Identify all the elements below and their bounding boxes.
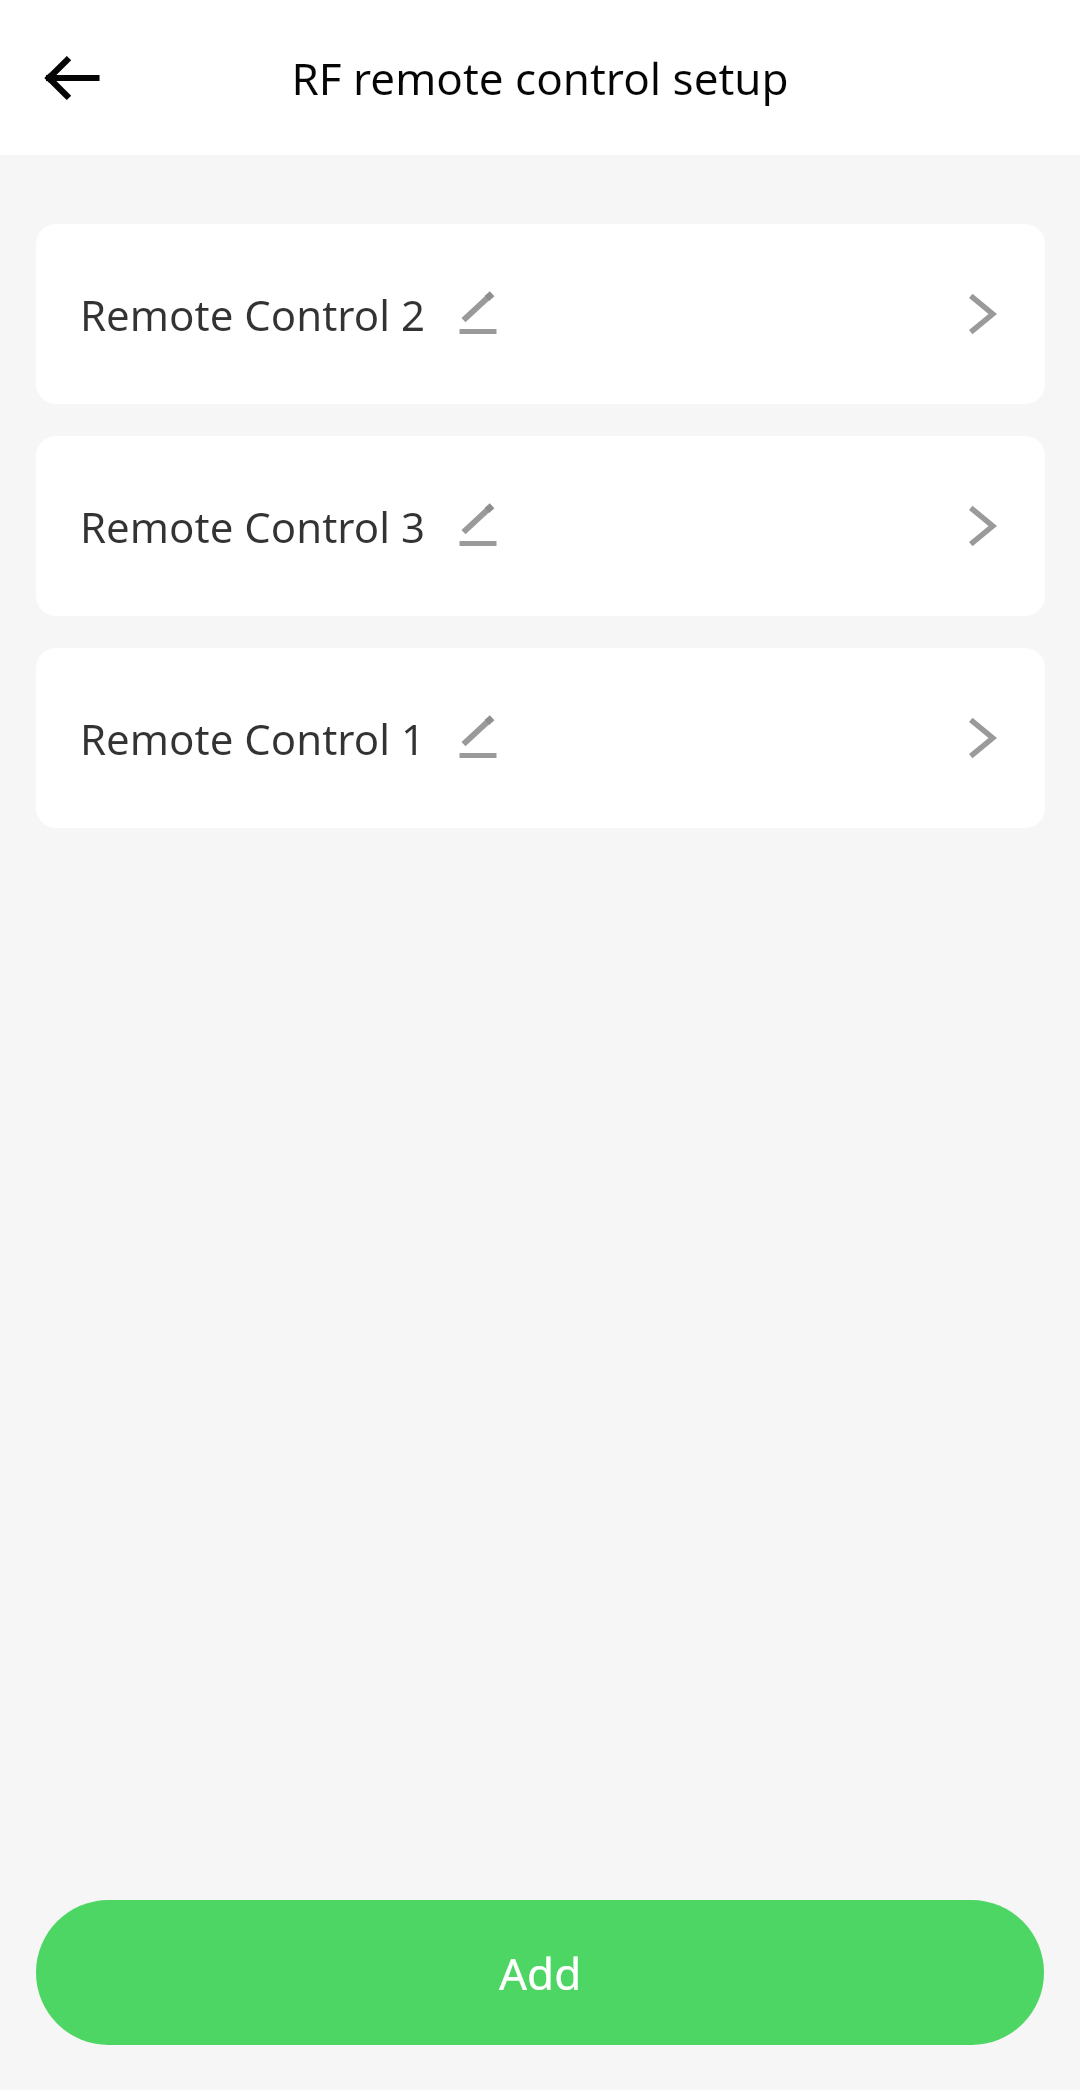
button[interactable]: Open remote control settings (943, 274, 1023, 354)
button[interactable]: Remote Control 1 (36, 648, 1045, 828)
staticText: Remote Control 1 (80, 710, 426, 767)
button[interactable]: Remote Control 3 (36, 436, 1045, 616)
button[interactable]: Rename (450, 710, 506, 766)
button[interactable]: Rename (450, 286, 506, 342)
button[interactable]: Open remote control settings (943, 698, 1023, 778)
staticText: RF remote control setup (0, 48, 1080, 108)
button[interactable]: Add (36, 1900, 1044, 2045)
button[interactable]: Back (24, 30, 120, 126)
button[interactable]: Rename (450, 498, 506, 554)
staticText: Remote Control 3 (80, 498, 426, 555)
button[interactable]: Remote Control 2 (36, 224, 1045, 404)
staticText: Remote Control 2 (80, 286, 426, 343)
staticText: Add (499, 1943, 582, 2003)
button[interactable]: Open remote control settings (943, 486, 1023, 566)
